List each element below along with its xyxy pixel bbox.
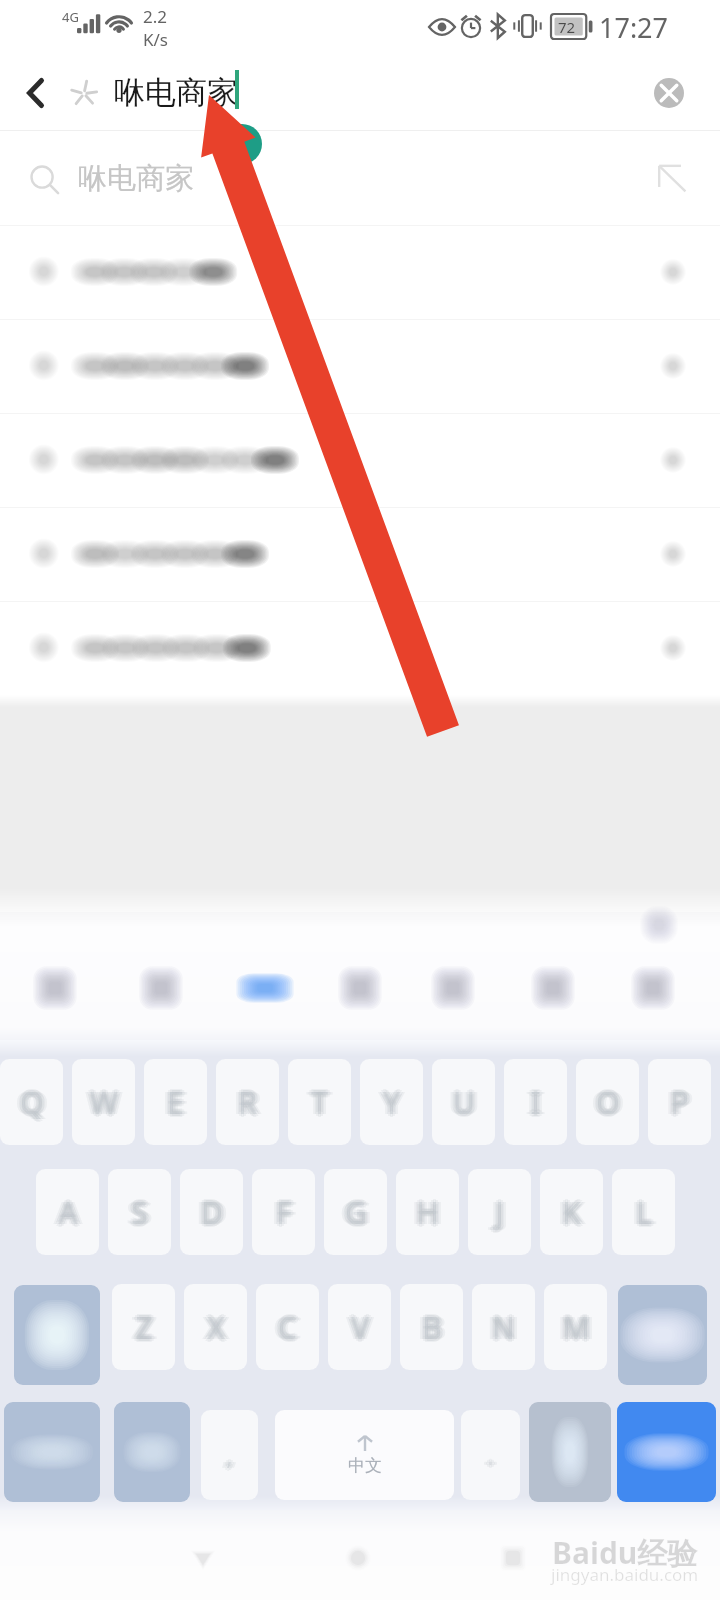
button[interactable]: Keyboard tool 7 [631, 966, 675, 1010]
staticText: O [594, 1084, 618, 1125]
staticText: X [209, 1305, 227, 1346]
staticText: Z [140, 1307, 158, 1348]
staticText: X [207, 1304, 225, 1345]
button[interactable]: Keyboard tool 1 [33, 966, 77, 1010]
button[interactable]: Emoji [114, 1402, 190, 1502]
button[interactable]: , [201, 1410, 258, 1500]
button[interactable]: E [144, 1059, 207, 1145]
staticText: J [495, 1192, 504, 1233]
button[interactable]: 咻电商家 [0, 131, 720, 225]
staticText: E [167, 1082, 184, 1123]
button[interactable]: A [36, 1169, 99, 1255]
button[interactable] [0, 413, 720, 507]
button[interactable]: R [216, 1059, 279, 1145]
staticText: R [238, 1082, 257, 1123]
button[interactable]: M [544, 1284, 607, 1370]
button[interactable]: C [256, 1284, 319, 1370]
button[interactable]: N [472, 1284, 535, 1370]
staticText: Y [380, 1082, 397, 1123]
staticText: A [58, 1189, 78, 1230]
staticText: U [458, 1082, 480, 1123]
button[interactable]: Voice input [529, 1402, 611, 1502]
staticText: S [131, 1195, 148, 1236]
staticText: 17:27 [599, 9, 669, 46]
button[interactable]: 中文 [275, 1410, 454, 1500]
button[interactable]: D [180, 1169, 243, 1255]
staticText: . [484, 1439, 491, 1472]
button[interactable] [0, 225, 720, 319]
button[interactable]: B [400, 1284, 463, 1370]
staticText: K [562, 1192, 581, 1233]
button[interactable]: Keyboard tool 3 [243, 966, 287, 1010]
button[interactable]: G [324, 1169, 387, 1255]
button[interactable]: Recents [491, 1536, 535, 1580]
staticText: 72 [558, 17, 576, 37]
button[interactable]: I [504, 1059, 567, 1145]
button[interactable]: K [540, 1169, 603, 1255]
staticText: P [670, 1082, 689, 1123]
button[interactable]: Y [360, 1059, 423, 1145]
staticText: G [345, 1192, 367, 1233]
staticText: W [88, 1080, 116, 1121]
staticText: W [85, 1082, 113, 1123]
staticText: N [495, 1307, 518, 1348]
button[interactable]: Keyboard tool 5 [431, 966, 475, 1010]
button[interactable]: Clear text [647, 71, 691, 115]
staticText: M [562, 1304, 590, 1345]
button[interactable]: Keyboard tool 2 [139, 966, 183, 1010]
staticText: R [236, 1080, 255, 1121]
staticText: T [311, 1079, 328, 1120]
button[interactable]: V [328, 1284, 391, 1370]
staticText: Z [135, 1307, 153, 1348]
button[interactable] [0, 507, 720, 601]
staticText: C [278, 1310, 297, 1351]
staticText: F [274, 1194, 290, 1235]
button[interactable]: Home [336, 1536, 380, 1580]
button[interactable]: Shift [14, 1285, 100, 1385]
button[interactable]: Q [0, 1059, 63, 1145]
button[interactable]: Keyboard tool 6 [531, 966, 575, 1010]
button[interactable]: Back [181, 1536, 225, 1580]
staticText: F [271, 1192, 287, 1233]
staticText: Y [383, 1082, 400, 1123]
staticText: E [170, 1082, 187, 1123]
button[interactable]: W [72, 1059, 135, 1145]
button[interactable]: U [432, 1059, 495, 1145]
button[interactable]: L [612, 1169, 675, 1255]
staticText: R [236, 1084, 255, 1125]
staticText: M [564, 1305, 592, 1346]
button[interactable]: Keyboard tool 4 [338, 966, 382, 1010]
button[interactable]: Enter [617, 1402, 716, 1502]
button[interactable]: J [468, 1169, 531, 1255]
button[interactable]: Hide keyboard [640, 905, 678, 945]
staticText: A [61, 1192, 81, 1233]
staticText: Z [138, 1307, 156, 1348]
staticText: N [489, 1307, 512, 1348]
button[interactable]: Symbols [4, 1402, 100, 1502]
button[interactable] [0, 319, 720, 413]
button[interactable]: H [396, 1169, 459, 1255]
button[interactable]: F [252, 1169, 315, 1255]
staticText: Z [135, 1304, 153, 1345]
staticText: O [596, 1082, 620, 1123]
staticText: D [199, 1194, 221, 1235]
staticText: P [672, 1084, 691, 1125]
staticText: J [490, 1192, 499, 1233]
staticText: M [557, 1307, 585, 1348]
button[interactable]: Backspace [618, 1285, 707, 1385]
staticText: J [492, 1192, 501, 1233]
button[interactable]: Z [112, 1284, 175, 1370]
staticText: S [126, 1192, 143, 1233]
button[interactable]: P [648, 1059, 711, 1145]
staticText: D [199, 1190, 221, 1231]
button[interactable]: O [576, 1059, 639, 1145]
staticText: P [665, 1082, 684, 1123]
button[interactable]: X [184, 1284, 247, 1370]
staticText: Z [130, 1307, 148, 1348]
button[interactable] [0, 601, 720, 695]
button[interactable]: T [288, 1059, 351, 1145]
staticText: N [497, 1307, 520, 1348]
button[interactable]: S [108, 1169, 171, 1255]
button[interactable]: Back [6, 64, 64, 122]
